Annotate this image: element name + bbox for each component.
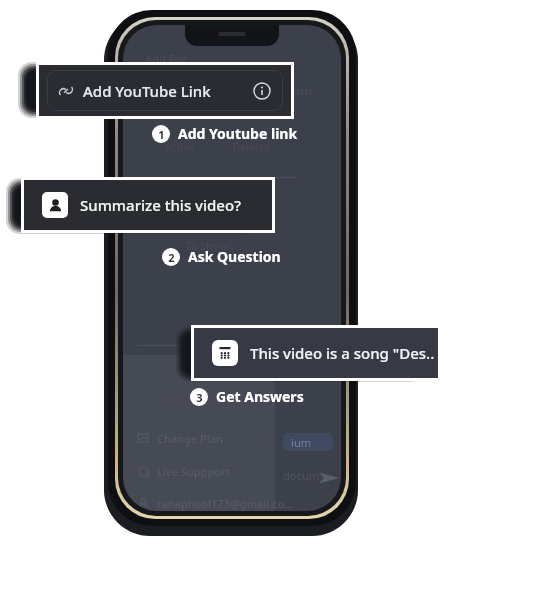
staticText: Add Youtube link	[178, 124, 298, 143]
staticText: ranaphool173@gmail.co...	[157, 496, 294, 511]
button[interactable]: Info	[253, 82, 271, 100]
staticText: 2	[168, 250, 175, 265]
button[interactable]: Person	[24, 180, 272, 230]
button[interactable]: 2	[160, 245, 283, 268]
staticText: Active	[165, 140, 194, 154]
staticText: This video is a song "Des..	[250, 343, 435, 363]
staticText: 3	[196, 390, 203, 405]
button[interactable]: 1	[150, 122, 300, 145]
staticText: to learn	[271, 83, 312, 98]
staticText: Get Answers	[216, 387, 304, 406]
staticText: Ask Question	[188, 247, 281, 266]
staticText: Add File	[145, 51, 187, 66]
staticText: Summarize this video?	[80, 195, 241, 215]
other: Person	[48, 198, 63, 213]
button[interactable]: 3	[188, 385, 306, 408]
staticText: 1	[158, 127, 165, 142]
other: Link	[59, 84, 73, 98]
staticText: docum	[283, 468, 320, 483]
other: Grid	[218, 346, 232, 360]
staticText: To Show!	[185, 238, 232, 253]
staticText: Add YouTube Link	[83, 81, 211, 101]
button[interactable]: Link	[39, 65, 291, 116]
staticText: Change Plan	[157, 431, 223, 446]
staticText: Deleted	[233, 140, 271, 154]
staticText: Live Suppport	[157, 464, 230, 479]
staticText: ium	[291, 435, 312, 450]
button[interactable]: Grid	[194, 328, 438, 378]
